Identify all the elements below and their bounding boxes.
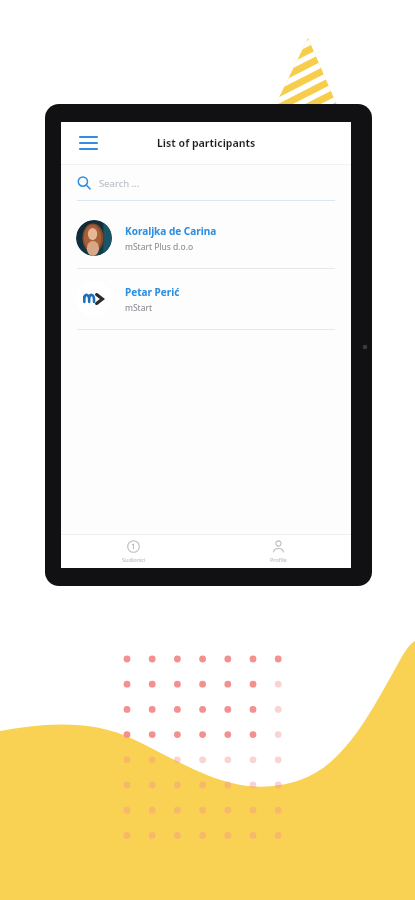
staticText: mStart Plus d.o.o xyxy=(125,241,194,253)
staticText: Koraljka de Carina xyxy=(125,224,217,238)
button[interactable]: Menu xyxy=(73,128,103,158)
staticText: Sudionici xyxy=(122,556,146,563)
button[interactable]: Search ... xyxy=(61,165,351,201)
button[interactable]: Petar Perić xyxy=(61,269,351,329)
button[interactable]: Koraljka de Carina xyxy=(61,208,351,268)
staticText: mStart xyxy=(125,302,153,314)
staticText: Petar Perić xyxy=(125,285,180,299)
button[interactable]: Sudionici xyxy=(61,535,206,568)
staticText: Profile xyxy=(270,556,287,563)
staticText: List of participants xyxy=(157,136,256,150)
staticText: Search ... xyxy=(99,177,140,190)
button[interactable]: Profile xyxy=(206,535,351,568)
